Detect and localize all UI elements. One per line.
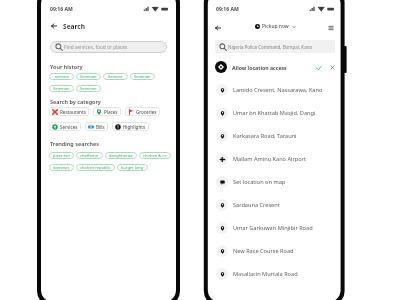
button[interactable]: Services [49, 122, 81, 131]
staticText: pizza hut [53, 153, 70, 158]
button[interactable]: Mallam Aminu Kano Airport [216, 153, 338, 165]
staticText: Set location on map [233, 178, 286, 186]
staticText: chofftime [80, 153, 99, 158]
staticText: Mallam Aminu Kano Airport [233, 155, 306, 163]
button[interactable]: Seminon [130, 73, 155, 80]
button[interactable]: chicken & co [139, 152, 171, 159]
staticText: Seminan [80, 74, 97, 79]
button[interactable]: Bills [85, 122, 108, 131]
staticText: New Race Course Road [233, 247, 294, 255]
staticText: Services [60, 124, 78, 130]
button[interactable]: Find services, food or places [50, 41, 167, 53]
staticText: Seninor [108, 74, 123, 79]
staticText: Restaurants [60, 109, 86, 115]
staticText: 09:16 AM [50, 6, 73, 13]
staticText: chicken republic [80, 165, 111, 170]
staticText: Highlights [123, 124, 146, 130]
button[interactable]: doughhouse [105, 152, 137, 159]
staticText: Bills [96, 124, 105, 130]
staticText: Find services, food or places [64, 44, 128, 51]
button[interactable]: Seminan [49, 85, 74, 92]
staticText: Pickup now [262, 23, 289, 30]
button[interactable]: Sardauna Cresent [216, 199, 338, 211]
staticText: dominos [53, 165, 70, 170]
staticText: Masallacin Murtala Road [233, 270, 298, 278]
staticText: Search [63, 22, 86, 31]
staticText: 09:16 AM [216, 6, 239, 13]
button[interactable]: Masallacin Murtala Road [216, 268, 338, 280]
staticText: Seminon [134, 74, 151, 79]
button[interactable]: chofftime [76, 152, 103, 159]
staticText: Umar Garkuwan Minjibir Road [233, 224, 313, 232]
button[interactable]: Seminan [76, 73, 101, 80]
button[interactable]: Places [93, 107, 121, 116]
button[interactable]: dominos [49, 164, 74, 171]
staticText: semina [55, 74, 69, 79]
button[interactable]: Restaurants [49, 107, 89, 116]
button[interactable]: Lamido Cresent, Nassarawa, Kano [216, 84, 338, 96]
button[interactable]: Back [48, 20, 60, 32]
button[interactable]: New Race Course Road [216, 245, 338, 257]
button[interactable]: Accept [314, 63, 323, 72]
button[interactable]: burger king [117, 164, 148, 171]
staticText: Nigeria Police Command, Bompai, Kano [228, 44, 313, 50]
staticText: Trending searches [50, 140, 99, 147]
button[interactable]: semina [49, 73, 74, 80]
button[interactable]: pizza hut [49, 152, 74, 159]
staticText: Umar bn Khattab Masjid, Dangi [233, 109, 316, 117]
staticText: chicken & co [143, 153, 167, 158]
button[interactable]: Back [212, 22, 224, 34]
staticText: Seminan [53, 86, 70, 91]
button[interactable]: Dismiss [328, 63, 337, 72]
staticText: Your history [50, 63, 83, 70]
staticText: Groceries [136, 109, 157, 115]
staticText: Karkasara Road, Tarauni [233, 132, 297, 140]
staticText: doughhouse [109, 153, 133, 158]
button[interactable]: Umar Garkuwan Minjibir Road [216, 222, 338, 234]
staticText: Search by category [50, 98, 101, 105]
button[interactable]: Highlights [112, 122, 149, 131]
button[interactable]: Karkasara Road, Tarauni [216, 130, 338, 142]
button[interactable]: Seminon [76, 85, 101, 92]
staticText: Sardauna Cresent [233, 201, 280, 209]
button[interactable]: Menu [325, 22, 336, 33]
staticText: Seminon [80, 86, 97, 91]
button[interactable]: Nigeria Police Command, Bompai, Kano [215, 40, 335, 53]
staticText: Allow location access [232, 64, 287, 71]
button[interactable]: Groceries [125, 107, 160, 116]
staticText: Lamido Cresent, Nassarawa, Kano [233, 86, 323, 94]
button[interactable]: Seninor [103, 73, 128, 80]
button[interactable]: Pickup now [255, 23, 296, 30]
button[interactable]: Set location on map [216, 176, 338, 188]
staticText: Places [104, 109, 118, 115]
button[interactable]: Allow location access [215, 61, 337, 73]
button[interactable]: Umar bn Khattab Masjid, Dangi [216, 107, 338, 119]
staticText: burger king [121, 165, 144, 170]
button[interactable]: chicken republic [76, 164, 115, 171]
